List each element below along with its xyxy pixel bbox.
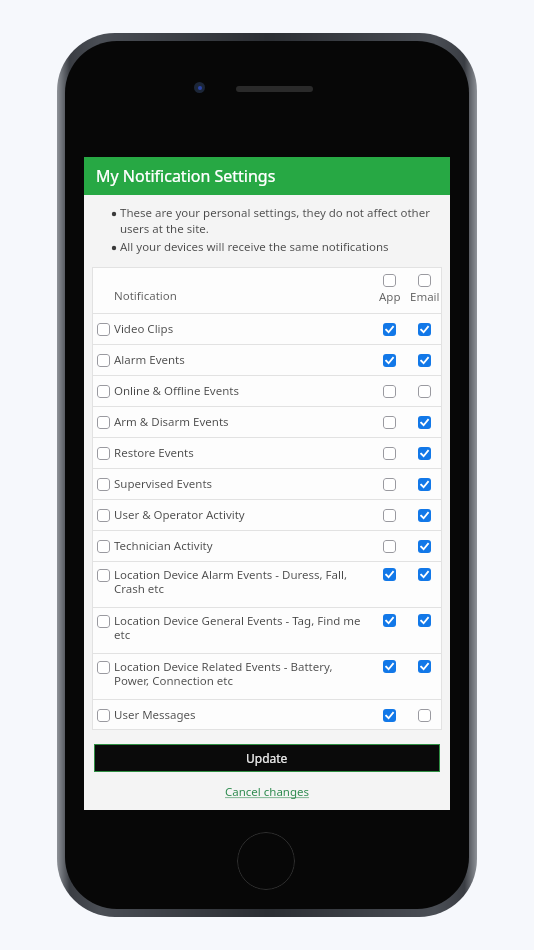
button[interactable] [383, 509, 396, 522]
button[interactable] [418, 385, 431, 398]
button[interactable]: Checked [418, 509, 431, 522]
button[interactable]: Checked [418, 323, 431, 336]
button[interactable]: Select Online & Offline Events [92, 376, 442, 406]
button[interactable]: Select all App [383, 274, 396, 287]
button[interactable]: Select Arm & Disarm Events [97, 416, 110, 429]
button[interactable]: Select Location Device Alarm Events - Du… [92, 562, 442, 607]
staticText: Arm & Disarm Events [114, 414, 229, 430]
button[interactable]: Checked [383, 709, 396, 722]
button[interactable]: Select Supervised Events [97, 478, 110, 491]
staticText: My Notification Settings [96, 165, 276, 187]
button[interactable]: Checked [418, 540, 431, 553]
button[interactable]: Select User & Operator Activity [97, 509, 110, 522]
button[interactable]: Select all Email [407, 274, 442, 313]
staticText: These are your personal settings, they d… [120, 205, 436, 236]
staticText: Location Device Alarm Events - Duress, F… [114, 567, 366, 596]
button[interactable]: Select Online & Offline Events [97, 385, 110, 398]
button[interactable]: Cancel changes [84, 784, 450, 800]
button[interactable]: Select Alarm Events [97, 354, 110, 367]
staticText: Supervised Events [114, 476, 213, 492]
button[interactable] [383, 447, 396, 460]
button[interactable]: Checked [418, 354, 431, 367]
button[interactable]: Checked [383, 568, 396, 581]
button[interactable]: Select User & Operator Activity [92, 500, 442, 530]
button[interactable]: Select User Messages [97, 709, 110, 722]
button[interactable]: Checked [383, 660, 396, 673]
button[interactable]: Checked [383, 354, 396, 367]
staticText: Email [410, 289, 440, 305]
button[interactable]: Select Restore Events [92, 438, 442, 468]
button[interactable]: Checked [418, 416, 431, 429]
staticText: Cancel changes [225, 784, 310, 800]
button[interactable]: Checked [418, 568, 431, 581]
button[interactable]: Checked [418, 660, 431, 673]
button[interactable]: Select Location Device Alarm Events - Du… [97, 569, 110, 582]
button[interactable]: Checked [418, 478, 431, 491]
staticText: Video Clips [114, 321, 174, 337]
staticText: Restore Events [114, 445, 194, 461]
button[interactable]: Select Video Clips [97, 323, 110, 336]
staticText: App [379, 289, 401, 305]
button[interactable]: Select Restore Events [97, 447, 110, 460]
button[interactable]: Select Technician Activity [97, 540, 110, 553]
button[interactable]: Checked [418, 447, 431, 460]
staticText: User & Operator Activity [114, 507, 245, 523]
button[interactable]: Select Location Device General Events - … [97, 615, 110, 628]
button[interactable]: Select Video Clips [92, 314, 442, 344]
button[interactable] [383, 385, 396, 398]
button[interactable]: Select Technician Activity [92, 531, 442, 561]
button[interactable]: Select all Email [418, 274, 431, 287]
button[interactable]: Select Alarm Events [92, 345, 442, 375]
button[interactable]: Checked [383, 614, 396, 627]
button[interactable]: Select Location Device Related Events - … [92, 654, 442, 699]
staticText: Notification [114, 288, 177, 304]
button[interactable]: Select Location Device Related Events - … [97, 661, 110, 674]
button[interactable]: Select User Messages [92, 700, 442, 730]
staticText: Technician Activity [114, 538, 213, 554]
staticText: Update [246, 750, 288, 766]
staticText: Location Device Related Events - Battery… [114, 659, 366, 688]
button[interactable]: Select Supervised Events [92, 469, 442, 499]
staticText: User Messages [114, 707, 196, 723]
staticText: Online & Offline Events [114, 383, 239, 399]
staticText: Location Device General Events - Tag, Fi… [114, 613, 366, 642]
button[interactable]: Checked [383, 323, 396, 336]
button[interactable] [383, 540, 396, 553]
button[interactable] [383, 416, 396, 429]
button[interactable]: Update [94, 744, 440, 772]
staticText: All your devices will receive the same n… [120, 239, 389, 255]
button[interactable] [383, 478, 396, 491]
button[interactable]: Select Arm & Disarm Events [92, 407, 442, 437]
button[interactable]: Select Location Device General Events - … [92, 608, 442, 653]
staticText: Alarm Events [114, 352, 185, 368]
button[interactable] [418, 709, 431, 722]
button[interactable]: Checked [418, 614, 431, 627]
button[interactable]: Select all App [372, 274, 407, 313]
button[interactable]: My Notification Settings [84, 157, 450, 195]
